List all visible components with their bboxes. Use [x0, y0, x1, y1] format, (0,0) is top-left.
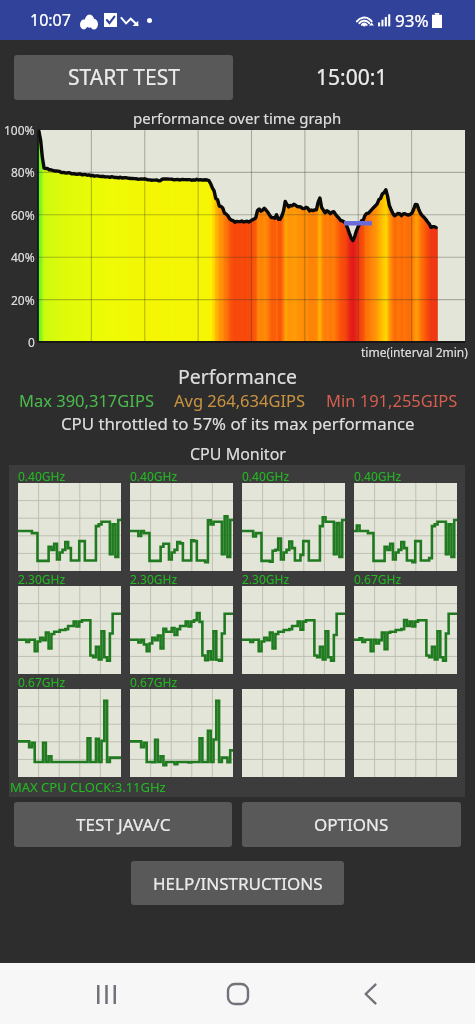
staticText: MAX CPU CLOCK:3.11GHz	[10, 778, 166, 796]
staticText: 2.30GHz	[18, 571, 66, 586]
staticText: 10:07	[30, 9, 71, 31]
staticText: 0.40GHz	[18, 468, 66, 483]
staticText: 80%	[11, 164, 35, 180]
staticText: 2.30GHz	[130, 571, 178, 586]
button[interactable]: TEST JAVA/C	[14, 802, 232, 847]
staticText: 0	[28, 334, 35, 350]
button[interactable]: Home	[212, 968, 264, 1020]
staticText: 40%	[11, 249, 35, 265]
staticText: 0.40GHz	[130, 468, 178, 483]
button[interactable]: Recent apps	[80, 968, 132, 1020]
staticText: 20%	[11, 292, 35, 308]
staticText: OPTIONS	[314, 813, 389, 836]
staticText: 0.67GHz	[18, 674, 66, 689]
staticText: 100%	[4, 122, 35, 138]
staticText: Avg 264,634GIPS	[174, 389, 306, 411]
staticText: 0.40GHz	[354, 468, 402, 483]
button[interactable]: START TEST	[14, 55, 233, 100]
staticText: CPU throttled to 57% of its max performa…	[61, 412, 415, 435]
staticText: 0.40GHz	[242, 468, 290, 483]
staticText: 60%	[11, 207, 35, 223]
staticText: Max 390,317GIPS	[19, 389, 154, 411]
staticText: CPU Monitor	[190, 443, 286, 465]
staticText: 2.30GHz	[242, 571, 290, 586]
staticText: Min 191,255GIPS	[326, 389, 458, 411]
staticText: 93%	[395, 9, 429, 32]
staticText: START TEST	[68, 63, 180, 92]
staticText: Performance	[178, 363, 297, 390]
button[interactable]: OPTIONS	[242, 802, 461, 847]
staticText: time(interval 2min)	[361, 344, 468, 360]
staticText: performance over time graph	[133, 108, 342, 128]
button[interactable]: HELP/INSTRUCTIONS	[131, 861, 344, 905]
staticText: 15:00:1	[316, 63, 388, 92]
button[interactable]: Back	[344, 968, 396, 1020]
staticText: TEST JAVA/C	[76, 813, 171, 836]
staticText: 0.67GHz	[130, 674, 178, 689]
staticText: HELP/INSTRUCTIONS	[153, 872, 323, 895]
staticText: 0.67GHz	[354, 571, 402, 586]
